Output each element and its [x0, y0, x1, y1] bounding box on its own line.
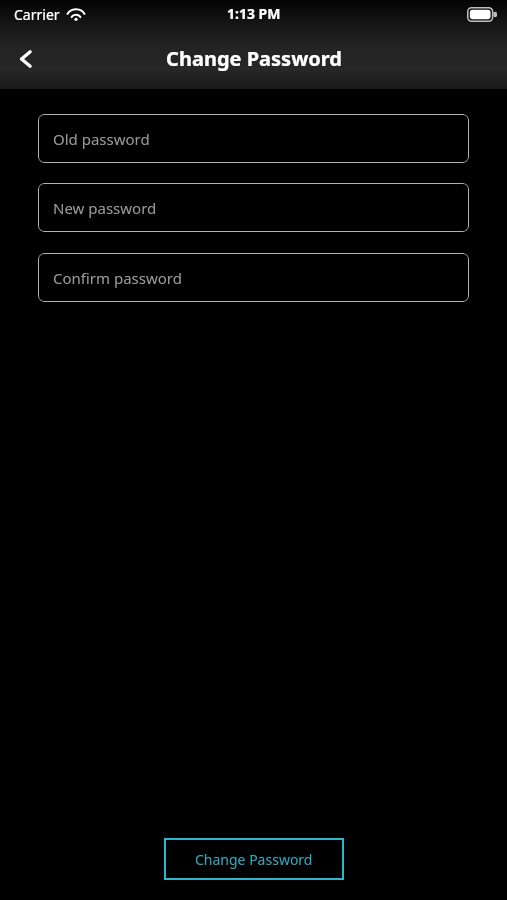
button[interactable]: Confirm password [38, 253, 469, 302]
staticText: New password [53, 198, 157, 218]
staticText: Confirm password [53, 268, 182, 288]
button[interactable]: Old password [38, 114, 469, 163]
staticText: Change Password [166, 45, 342, 72]
button[interactable]: New password [38, 183, 469, 232]
staticText: Change Password [195, 850, 313, 869]
staticText: 1:13 PM [227, 4, 281, 23]
staticText: Carrier [14, 5, 60, 24]
button[interactable]: Change Password [164, 838, 344, 880]
staticText: Old password [53, 129, 150, 149]
button[interactable]: Back [0, 33, 52, 85]
